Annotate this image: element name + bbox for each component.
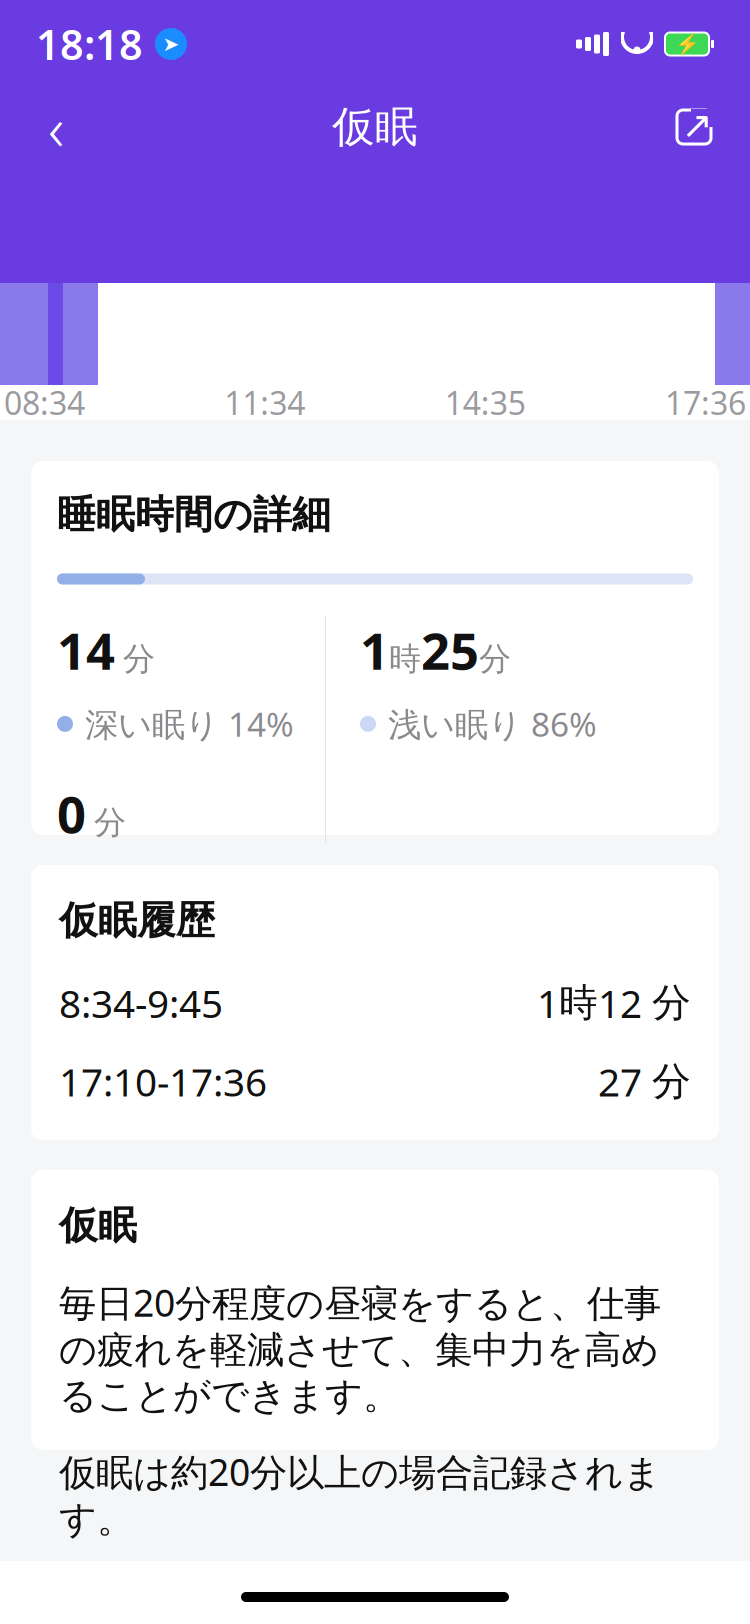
staticText: 毎日20分程度の昼寝をすると、仕事の疲れを軽減させて、集中力を高めることができま… <box>59 1277 661 1419</box>
staticText: 分 <box>652 979 691 1027</box>
staticText: 仮眠は約20分以上の場合記録されます。 <box>59 1447 661 1542</box>
button[interactable]: Back <box>26 97 86 157</box>
staticText: 17:36 <box>665 381 746 424</box>
staticText: 25 <box>421 616 479 684</box>
staticText: 分 <box>123 639 155 679</box>
staticText: 睡眠時間の詳細 <box>57 491 331 538</box>
staticText: ↗ <box>681 104 712 146</box>
staticText: 分 <box>94 803 126 842</box>
staticText: 仮眠 <box>332 101 418 153</box>
staticText: 11:34 <box>224 381 305 424</box>
staticText: ⚡ <box>674 33 699 55</box>
staticText: 時 <box>389 639 421 679</box>
staticText: 08:34 <box>4 381 85 424</box>
staticText: 覚醒 <box>85 865 151 906</box>
staticText: 仮眠 <box>59 1202 137 1249</box>
staticText: 14:35 <box>445 381 526 424</box>
staticText: 18:18 <box>36 17 143 71</box>
staticText: 時 <box>559 979 598 1027</box>
staticText: 14 <box>57 616 115 684</box>
staticText: 仮眠履歴 <box>59 897 215 944</box>
staticText: 0 <box>57 780 86 847</box>
staticText: 深い眠り 14% <box>85 702 294 746</box>
staticText: 浅い眠り 86% <box>388 702 597 746</box>
staticText: 12 <box>598 977 642 1029</box>
staticText: ‹ <box>48 86 64 168</box>
button[interactable]: Share <box>664 97 724 157</box>
staticText: 27 <box>598 1056 642 1107</box>
staticText: 分 <box>479 639 511 679</box>
staticText: 1 <box>537 977 559 1029</box>
staticText: 分 <box>652 1058 691 1105</box>
staticText: 8:34-9:45 <box>59 977 223 1029</box>
staticText: ➤ <box>162 33 179 55</box>
staticText: 17:10-17:36 <box>59 1056 267 1107</box>
staticText: 1 <box>360 616 389 684</box>
